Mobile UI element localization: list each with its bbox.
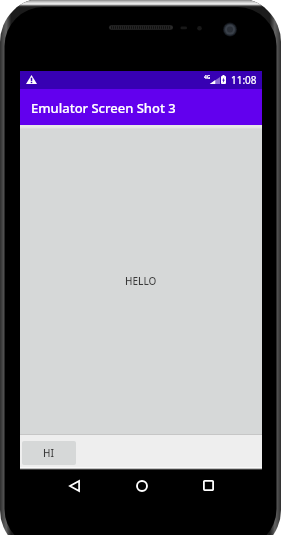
staticText: HELLO [125,274,157,288]
button[interactable]: Home [108,470,175,501]
button[interactable]: Emulator Screen Shot 3 [20,89,262,125]
staticText: 4G [204,74,211,81]
button[interactable]: HI [22,441,76,465]
button[interactable]: Back [40,470,108,501]
staticText: Emulator Screen Shot 3 [31,99,176,117]
button[interactable]: Recent apps [175,470,242,501]
staticText: HI [43,446,55,460]
staticText: 11:08 [231,73,257,87]
